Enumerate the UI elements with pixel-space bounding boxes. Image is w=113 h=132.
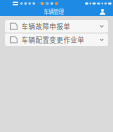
button[interactable]: 用户中心: [99, 7, 113, 16]
button[interactable]: 车辆故障申报单: [5, 20, 108, 32]
staticText: 车辆故障申报单: [22, 21, 71, 31]
button[interactable]: 车辆配置变更作业单: [5, 33, 108, 46]
staticText: 车辆配置变更作业单: [22, 35, 85, 44]
staticText: 车辆管理: [43, 8, 63, 15]
